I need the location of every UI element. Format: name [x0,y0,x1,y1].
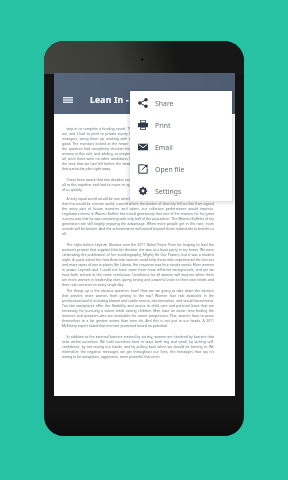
staticText: Open file [155,165,185,174]
staticText: Print [155,121,171,130]
staticText: A truly equal world would be one where w… [62,196,214,236]
staticText: Email [155,143,173,152]
staticText: The night before Leymah Gbowee won the 2… [62,242,214,287]
button[interactable]: Email [130,136,232,158]
staticText: I have been aware that two decades earli… [62,177,214,192]
staticText: step in to complete a funding round. The… [62,126,214,171]
staticText: In addition to the external barriers ere… [62,334,214,359]
button[interactable]: Open file [130,158,232,180]
button[interactable]: Share [130,92,232,114]
button[interactable]: Print [130,114,232,136]
staticText: Lean In - S [90,94,136,106]
staticText: The things up is the obvious question: h… [62,288,214,328]
staticText: Share [155,99,174,108]
staticText: Settings [155,187,182,196]
button[interactable]: Open navigation drawer [57,89,78,110]
button[interactable]: Settings [130,180,232,202]
